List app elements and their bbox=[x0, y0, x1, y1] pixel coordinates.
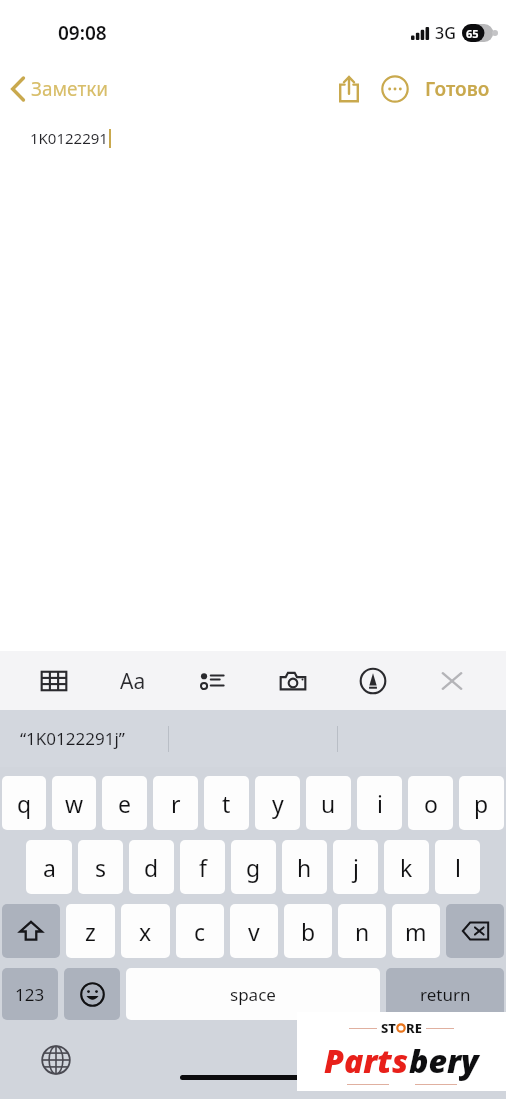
button[interactable]: n bbox=[338, 904, 386, 958]
staticText: a bbox=[43, 852, 56, 883]
button[interactable]: m bbox=[392, 904, 440, 958]
button[interactable]: Checklist bbox=[187, 656, 239, 706]
button[interactable]: Backspace bbox=[446, 904, 504, 958]
button[interactable]: Camera bbox=[267, 656, 319, 706]
button[interactable]: b bbox=[284, 904, 332, 958]
button[interactable]: h bbox=[282, 840, 327, 894]
button[interactable]: f bbox=[180, 840, 225, 894]
staticText: 09:08 bbox=[58, 20, 107, 46]
staticText: t bbox=[222, 788, 231, 819]
button[interactable]: “1K0122291j” bbox=[20, 727, 125, 750]
staticText: space bbox=[230, 983, 276, 1006]
staticText: n bbox=[355, 916, 370, 947]
staticText: d bbox=[144, 852, 159, 883]
staticText: u bbox=[321, 788, 336, 819]
staticText: Parts bbox=[324, 1039, 409, 1083]
staticText: Заметки bbox=[31, 76, 109, 102]
staticText: o bbox=[424, 788, 438, 819]
button[interactable]: Close keyboard bbox=[426, 656, 478, 706]
button[interactable]: s bbox=[78, 840, 123, 894]
staticText: z bbox=[85, 916, 96, 947]
staticText: e bbox=[118, 788, 131, 819]
button[interactable]: q bbox=[2, 776, 46, 830]
button[interactable]: a bbox=[26, 840, 72, 894]
button[interactable]: 123 bbox=[2, 968, 58, 1020]
staticText: m bbox=[405, 916, 427, 947]
button[interactable]: e bbox=[102, 776, 147, 830]
staticText: f bbox=[199, 852, 207, 883]
staticText: h bbox=[297, 852, 312, 883]
button[interactable]: k bbox=[384, 840, 429, 894]
button[interactable]: t bbox=[204, 776, 249, 830]
staticText: j bbox=[353, 852, 359, 883]
staticText: c bbox=[194, 916, 206, 947]
button[interactable]: l bbox=[435, 840, 480, 894]
button[interactable]: z bbox=[66, 904, 115, 958]
button[interactable]: d bbox=[129, 840, 174, 894]
staticText: r bbox=[171, 788, 181, 819]
staticText: 65 bbox=[466, 26, 479, 41]
staticText: RE bbox=[406, 1019, 422, 1037]
staticText: Готово bbox=[425, 76, 490, 102]
button[interactable]: u bbox=[306, 776, 351, 830]
button[interactable]: o bbox=[408, 776, 453, 830]
button[interactable]: c bbox=[176, 904, 224, 958]
staticText: i bbox=[377, 788, 383, 819]
button[interactable]: v bbox=[230, 904, 278, 958]
staticText: b bbox=[301, 916, 316, 947]
staticText: return bbox=[420, 983, 471, 1006]
button[interactable]: Shift bbox=[2, 904, 60, 958]
button[interactable]: Готово bbox=[419, 70, 496, 108]
button[interactable]: Format text bbox=[107, 656, 159, 706]
staticText: bery bbox=[409, 1039, 479, 1083]
staticText: Aa bbox=[120, 667, 146, 696]
button[interactable]: Emoji bbox=[64, 968, 120, 1020]
button[interactable]: Markup bbox=[347, 656, 399, 706]
button[interactable]: j bbox=[333, 840, 378, 894]
staticText: l bbox=[455, 852, 461, 883]
button[interactable]: g bbox=[231, 840, 276, 894]
button[interactable]: y bbox=[255, 776, 300, 830]
button[interactable]: space bbox=[126, 968, 380, 1020]
staticText: v bbox=[248, 916, 260, 947]
staticText: s bbox=[95, 852, 107, 883]
button[interactable]: Share bbox=[329, 69, 369, 109]
button[interactable]: p bbox=[459, 776, 504, 830]
button[interactable]: x bbox=[121, 904, 170, 958]
staticText: x bbox=[139, 916, 152, 947]
staticText: g bbox=[246, 852, 261, 883]
staticText: ST bbox=[381, 1019, 396, 1037]
staticText: 1K0122291 bbox=[30, 128, 108, 148]
button[interactable]: Table bbox=[28, 656, 80, 706]
button[interactable]: More options bbox=[375, 69, 415, 109]
staticText: 3G bbox=[435, 22, 456, 44]
staticText: q bbox=[17, 788, 32, 819]
staticText: k bbox=[400, 852, 413, 883]
button[interactable]: r bbox=[153, 776, 198, 830]
button[interactable]: Switch keyboard language bbox=[34, 1038, 78, 1082]
button[interactable]: i bbox=[357, 776, 402, 830]
staticText: w bbox=[65, 788, 84, 819]
button[interactable]: w bbox=[52, 776, 96, 830]
staticText: y bbox=[272, 788, 284, 819]
button[interactable]: return bbox=[386, 968, 504, 1020]
staticText: 123 bbox=[15, 983, 45, 1006]
button[interactable]: Заметки bbox=[8, 72, 113, 106]
staticText: p bbox=[474, 788, 489, 819]
